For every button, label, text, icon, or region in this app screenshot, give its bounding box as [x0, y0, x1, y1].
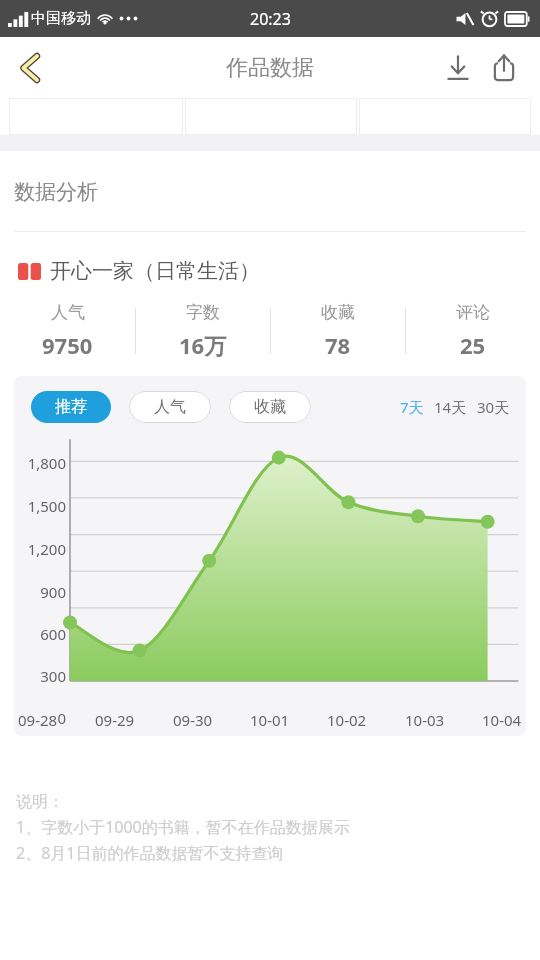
staticText: 人气	[51, 302, 85, 323]
button[interactable]: 评论	[406, 302, 540, 360]
staticText: 1,800	[14, 453, 66, 473]
staticText: 数据分析	[14, 179, 98, 205]
staticText: 300	[14, 666, 66, 686]
button[interactable]: 30天	[477, 397, 510, 417]
staticText: 900	[14, 582, 66, 602]
button[interactable]: 推荐	[31, 391, 111, 423]
button[interactable]: Back	[6, 44, 54, 92]
staticText: 1、字数小于1000的书籍，暂不在作品数据展示	[16, 816, 350, 838]
staticText: 600	[14, 624, 66, 644]
staticText: 10-02	[327, 710, 367, 730]
button[interactable]: 人气	[129, 391, 211, 423]
button[interactable]: Download	[436, 46, 480, 90]
staticText: 收藏	[254, 397, 286, 417]
staticText: 10-01	[250, 710, 290, 730]
staticText: 评论	[456, 302, 490, 323]
staticText: 2、8月1日前的作品数据暂不支持查询	[16, 842, 284, 864]
button[interactable]: 14天	[434, 397, 467, 417]
staticText: 09-28	[18, 710, 58, 730]
staticText: 说明：	[16, 792, 64, 812]
staticText: 开心一家（日常生活）	[50, 258, 260, 284]
button[interactable]: Share	[482, 46, 526, 90]
staticText: 中国移动	[31, 9, 91, 28]
staticText: 1,500	[14, 496, 66, 516]
button[interactable]: 人气	[0, 302, 135, 360]
staticText: 78	[325, 330, 351, 360]
staticText: 人气	[154, 397, 186, 417]
button[interactable]: 收藏	[271, 302, 405, 360]
staticText: 25	[460, 330, 486, 360]
staticText: 0	[14, 708, 66, 728]
staticText: 收藏	[321, 302, 355, 323]
staticText: 09-30	[173, 710, 213, 730]
staticText: 1,200	[14, 539, 66, 559]
staticText: 20:23	[250, 8, 291, 30]
staticText: 16万	[179, 330, 227, 360]
staticText: 推荐	[55, 397, 87, 417]
staticText: 9750	[42, 330, 93, 360]
button[interactable]: 字数	[136, 302, 270, 360]
staticText: 字数	[186, 302, 220, 323]
button[interactable]: 收藏	[229, 391, 311, 423]
staticText: 09-29	[95, 710, 135, 730]
staticText: 10-04	[482, 710, 522, 730]
staticText: 10-03	[405, 710, 445, 730]
staticText: 作品数据	[226, 54, 314, 82]
button[interactable]: 7天	[400, 397, 424, 417]
